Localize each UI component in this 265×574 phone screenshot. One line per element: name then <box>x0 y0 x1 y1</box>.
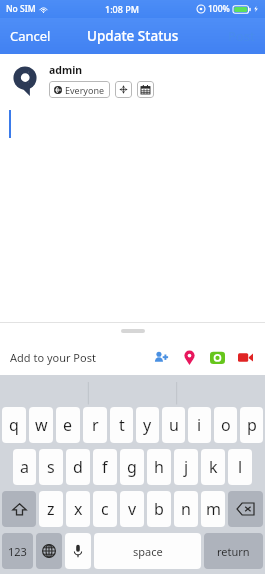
button[interactable]: o <box>214 407 237 443</box>
button[interactable]: Profile photo <box>8 62 42 96</box>
button[interactable]: 123 <box>2 533 33 569</box>
button[interactable]: Add location <box>179 347 199 367</box>
button[interactable]: l <box>228 449 252 485</box>
staticText: g <box>127 456 137 478</box>
button[interactable]: Check in location <box>115 81 132 98</box>
button[interactable]: r <box>83 407 107 443</box>
button[interactable]: Voice input <box>65 533 91 569</box>
staticText: x <box>74 498 83 520</box>
button[interactable]: a <box>13 449 36 485</box>
staticText: m <box>206 498 221 520</box>
staticText: Update Status <box>87 27 179 45</box>
button[interactable]: h <box>147 449 171 485</box>
staticText: z <box>47 498 55 520</box>
staticText: 123 <box>8 544 27 559</box>
button[interactable]: f <box>93 449 117 485</box>
staticText: r <box>92 414 99 436</box>
button[interactable]: Shift <box>2 491 36 527</box>
button[interactable]: u <box>162 407 185 443</box>
button[interactable]: Backspace <box>228 491 263 527</box>
button[interactable]: t <box>110 407 133 443</box>
staticText: n <box>181 498 191 520</box>
button[interactable]: b <box>147 491 171 527</box>
button[interactable]: e <box>56 407 80 443</box>
staticText: c <box>101 498 109 520</box>
staticText: v <box>128 498 137 520</box>
button[interactable]: Tag people <box>151 347 171 367</box>
button[interactable]: Add video <box>235 347 255 367</box>
button[interactable]: m <box>201 491 225 527</box>
staticText: return <box>217 544 250 559</box>
staticText: o <box>221 414 231 436</box>
staticText: w <box>35 414 48 436</box>
staticText: i <box>197 414 202 436</box>
button[interactable]: g <box>120 449 144 485</box>
staticText: b <box>154 498 164 520</box>
staticText: 1:08 PM <box>105 3 139 15</box>
button[interactable]: Add photo <box>207 347 227 367</box>
button[interactable]: j <box>174 449 198 485</box>
button[interactable]: c <box>93 491 117 527</box>
button[interactable]: space <box>94 533 201 569</box>
staticText: u <box>169 414 179 436</box>
staticText: j <box>184 456 189 478</box>
staticText: Cancel <box>10 27 51 45</box>
button[interactable]: q <box>2 407 26 443</box>
staticText: f <box>102 456 108 478</box>
staticText: space <box>133 544 163 559</box>
staticText: t <box>119 414 125 436</box>
staticText: y <box>143 414 152 436</box>
button[interactable]: w <box>29 407 53 443</box>
button[interactable]: i <box>188 407 211 443</box>
button[interactable]: Schedule post <box>137 81 154 98</box>
button[interactable]: Change keyboard language <box>36 533 62 569</box>
staticText: l <box>238 456 243 478</box>
button[interactable]: v <box>120 491 144 527</box>
button[interactable]: Post <box>218 18 265 54</box>
staticText: a <box>20 456 29 478</box>
staticText: Add to your Post <box>10 350 96 365</box>
staticText: s <box>47 456 55 478</box>
staticText: q <box>9 414 19 436</box>
staticText: e <box>63 414 73 436</box>
staticText: d <box>73 456 83 478</box>
button[interactable]: z <box>39 491 63 527</box>
button[interactable]: y <box>136 407 159 443</box>
staticText: Everyone <box>65 84 105 96</box>
staticText: p <box>247 414 257 436</box>
button[interactable]: x <box>66 491 90 527</box>
button[interactable]: Everyone <box>49 81 110 98</box>
staticText: k <box>209 456 218 478</box>
button[interactable]: n <box>174 491 198 527</box>
button[interactable]: d <box>66 449 90 485</box>
button[interactable]: Cancel <box>0 18 61 54</box>
staticText: 100% <box>208 3 230 15</box>
staticText: h <box>154 456 164 478</box>
button[interactable]: p <box>240 407 263 443</box>
staticText: admin <box>49 63 83 77</box>
staticText: No SIM <box>6 3 36 15</box>
button[interactable]: s <box>39 449 63 485</box>
button[interactable]: return <box>204 533 263 569</box>
button[interactable]: k <box>201 449 225 485</box>
